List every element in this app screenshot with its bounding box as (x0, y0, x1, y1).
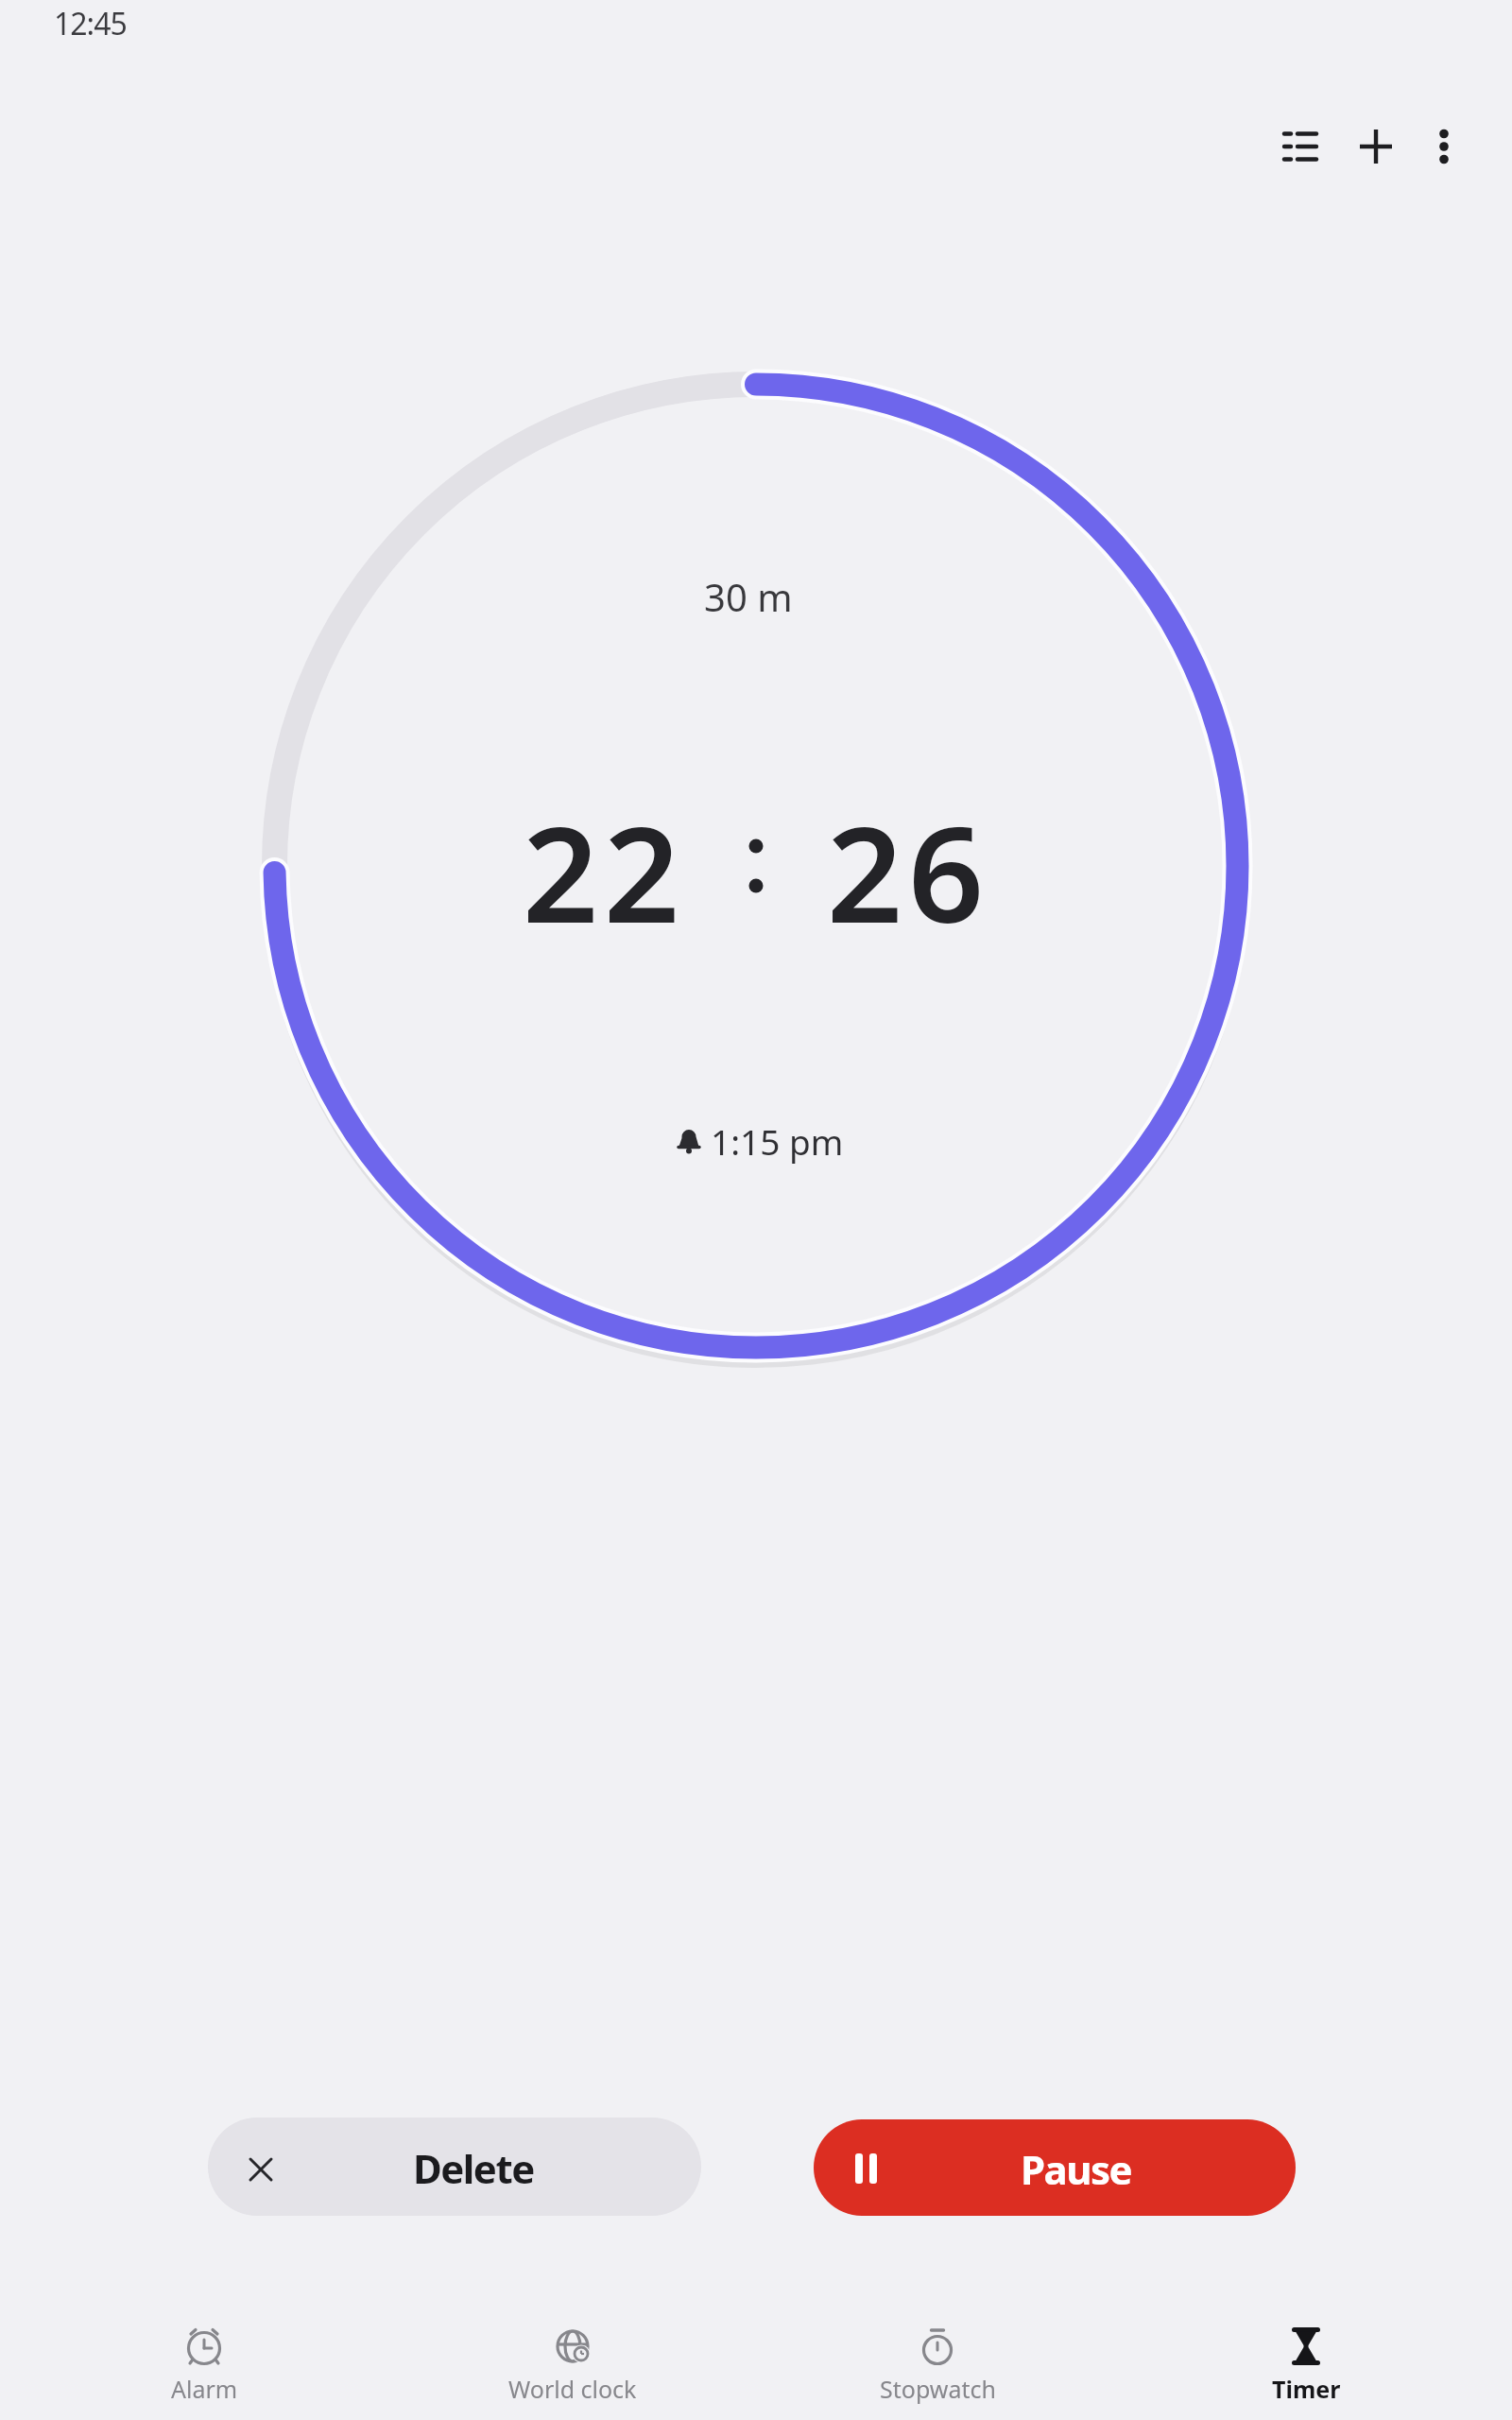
staticText: 30 m (704, 571, 793, 622)
button[interactable] (1266, 112, 1334, 181)
button[interactable]: Delete (208, 2117, 701, 2216)
staticText: 22 (523, 781, 686, 951)
staticText: 26 (827, 781, 990, 951)
staticText: World clock (508, 2373, 637, 2405)
button[interactable]: World clock (497, 2312, 648, 2414)
button[interactable] (1410, 112, 1478, 181)
button[interactable]: Alarm (129, 2312, 280, 2414)
staticText: Stopwatch (880, 2373, 996, 2405)
button[interactable] (1342, 112, 1410, 181)
staticText: Timer (1272, 2373, 1341, 2405)
staticText: 12:45 (54, 3, 127, 44)
staticText: Pause (1021, 2142, 1132, 2196)
staticText: 1:15 pm (711, 1117, 844, 1165)
button[interactable]: Pause (814, 2119, 1296, 2216)
button[interactable]: Stopwatch (862, 2312, 1013, 2414)
staticText: Alarm (171, 2373, 238, 2405)
staticText: Delete (413, 2141, 534, 2195)
button[interactable]: Timer (1230, 2312, 1382, 2414)
